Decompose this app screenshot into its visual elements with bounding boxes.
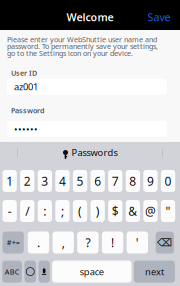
button[interactable]: Passwords bbox=[18, 142, 162, 163]
staticText: ! bbox=[111, 234, 114, 251]
button[interactable]: / bbox=[20, 200, 34, 222]
staticText: 2 bbox=[24, 173, 31, 189]
staticText: $ bbox=[112, 203, 119, 219]
staticText: , bbox=[62, 234, 65, 251]
button[interactable]: $ bbox=[108, 200, 122, 222]
staticText: Save bbox=[147, 10, 170, 24]
staticText: . bbox=[37, 234, 40, 251]
button[interactable]: Delete bbox=[156, 231, 174, 253]
button[interactable]: 6 bbox=[90, 170, 105, 192]
button[interactable]: ) bbox=[90, 200, 105, 222]
staticText: 7 bbox=[112, 173, 119, 189]
button[interactable]: 3 bbox=[38, 170, 52, 192]
staticText: 5 bbox=[77, 173, 84, 189]
button[interactable]: , bbox=[52, 231, 74, 253]
staticText: Welcome bbox=[66, 10, 113, 24]
staticText: Passwords bbox=[71, 146, 117, 159]
button[interactable]: Emoji bbox=[24, 261, 36, 283]
staticText: @ bbox=[145, 203, 156, 219]
button[interactable]: & bbox=[126, 200, 140, 222]
staticText: 1 bbox=[6, 173, 13, 189]
button[interactable]: •••••• bbox=[7, 121, 167, 137]
staticText: 0 bbox=[164, 173, 171, 189]
button[interactable]: 5 bbox=[73, 170, 87, 192]
button[interactable]: : bbox=[38, 200, 52, 222]
staticText: space bbox=[80, 265, 104, 278]
staticText: Password bbox=[11, 105, 45, 115]
staticText: " bbox=[165, 203, 170, 219]
staticText: ' bbox=[136, 234, 139, 251]
button[interactable]: ? bbox=[77, 231, 99, 253]
staticText: •••••• bbox=[14, 122, 38, 135]
button[interactable]: 0 bbox=[161, 170, 175, 192]
button[interactable]: 7 bbox=[108, 170, 122, 192]
button[interactable]: 4 bbox=[55, 170, 70, 192]
staticText: Please enter your WebShuttle user name a… bbox=[7, 36, 158, 57]
button[interactable]: @ bbox=[143, 200, 158, 222]
staticText: ⌫ bbox=[157, 236, 172, 249]
button[interactable]: next bbox=[134, 261, 175, 283]
button[interactable]: - bbox=[2, 200, 17, 222]
staticText: #+= bbox=[7, 237, 20, 247]
staticText: az001 bbox=[14, 80, 38, 93]
staticText: ( bbox=[78, 203, 82, 219]
button[interactable]: 2 bbox=[20, 170, 34, 192]
staticText: ? bbox=[85, 234, 90, 251]
staticText: 6 bbox=[94, 173, 101, 189]
button[interactable]: . bbox=[28, 231, 49, 253]
button[interactable]: #+= bbox=[2, 231, 24, 253]
button[interactable]: ABC bbox=[2, 261, 22, 283]
button[interactable]: 8 bbox=[126, 170, 140, 192]
staticText: 3 bbox=[41, 173, 48, 189]
staticText: 4 bbox=[59, 173, 66, 189]
staticText: / bbox=[25, 203, 29, 219]
staticText: & bbox=[128, 203, 137, 219]
button[interactable]: az001 bbox=[7, 79, 167, 95]
button[interactable]: Dictation bbox=[38, 261, 50, 283]
staticText: ; bbox=[61, 203, 64, 219]
staticText: next bbox=[145, 265, 164, 278]
button[interactable]: ! bbox=[102, 231, 123, 253]
button[interactable]: " bbox=[161, 200, 175, 222]
button[interactable]: ( bbox=[73, 200, 87, 222]
staticText: 8 bbox=[129, 173, 136, 189]
button[interactable]: 1 bbox=[2, 170, 17, 192]
button[interactable]: Save bbox=[141, 6, 177, 28]
button[interactable]: space bbox=[52, 261, 131, 283]
staticText: - bbox=[8, 203, 12, 219]
button[interactable]: 9 bbox=[143, 170, 158, 192]
staticText: 9 bbox=[147, 173, 154, 189]
staticText: User ID bbox=[11, 68, 37, 78]
staticText: ) bbox=[96, 203, 100, 219]
button[interactable]: ; bbox=[55, 200, 70, 222]
staticText: ABC bbox=[5, 267, 20, 277]
staticText: : bbox=[43, 203, 46, 219]
button[interactable]: ' bbox=[127, 231, 148, 253]
